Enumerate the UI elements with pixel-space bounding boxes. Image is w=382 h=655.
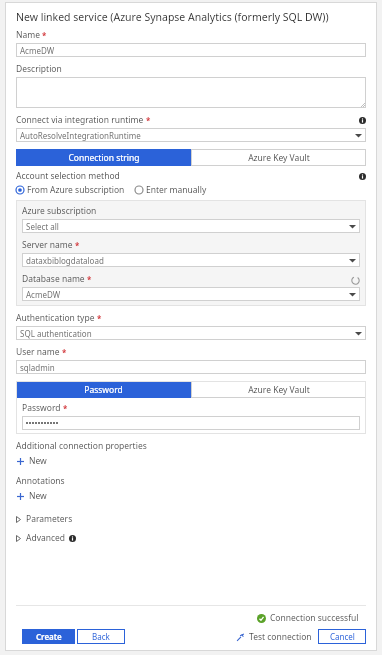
button[interactable]: Cancel <box>318 629 366 644</box>
staticText: Description <box>16 63 62 75</box>
button[interactable]: Advanced <box>16 530 366 546</box>
button[interactable]: Back <box>77 629 125 644</box>
staticText: * <box>75 240 80 251</box>
staticText: Create <box>36 631 62 642</box>
staticText: Server name <box>22 239 73 251</box>
button[interactable]: Parameters <box>16 511 366 527</box>
staticText: Azure Key Vault <box>248 152 310 164</box>
staticText: Annotations <box>16 475 65 487</box>
button[interactable]: Test connection <box>236 631 312 643</box>
staticText: From Azure subscription <box>27 184 125 196</box>
staticText: Additional connection properties <box>16 440 147 452</box>
staticText: sqladmin <box>20 362 55 373</box>
button[interactable]: Create <box>22 629 75 644</box>
button[interactable]: Password <box>16 381 191 398</box>
button[interactable]: Azure Key Vault <box>191 381 366 398</box>
staticText: Parameters <box>26 513 73 525</box>
staticText: * <box>97 313 102 324</box>
staticText: Enter manually <box>146 184 207 196</box>
staticText: Connection successful <box>270 612 359 624</box>
button[interactable]: Refresh <box>351 276 360 285</box>
button[interactable] <box>16 77 366 108</box>
staticText: SQL authentication <box>20 328 92 339</box>
staticText: * <box>42 30 47 41</box>
staticText: Account selection method <box>16 170 120 182</box>
staticText: AutoResolveIntegrationRuntime <box>20 130 141 141</box>
staticText: Name <box>16 29 40 41</box>
staticText: New <box>29 455 47 467</box>
staticText: Advanced <box>26 532 66 544</box>
staticText: Azure Key Vault <box>248 384 310 396</box>
button[interactable]: New <box>16 454 47 468</box>
staticText: New <box>29 490 47 502</box>
staticText: * <box>87 274 92 285</box>
button[interactable]: New <box>16 489 47 503</box>
staticText: Cancel <box>330 631 355 642</box>
button[interactable]: AcmeDW <box>16 43 366 57</box>
staticText: * <box>63 403 68 414</box>
staticText: dataxbiblogdataload <box>26 255 104 266</box>
staticText: AcmeDW <box>20 45 55 56</box>
button[interactable]: SQL authentication <box>16 326 366 340</box>
button[interactable]: dataxbiblogdataload <box>22 253 360 267</box>
staticText: Back <box>92 631 110 642</box>
staticText: Authentication type <box>16 312 95 324</box>
staticText: Test connection <box>249 631 312 643</box>
staticText: * <box>62 347 67 358</box>
staticText: Password <box>84 384 123 396</box>
staticText: Azure subscription <box>22 205 97 217</box>
button[interactable]: AcmeDW <box>22 287 360 301</box>
staticText: Select all <box>26 221 59 232</box>
staticText: AcmeDW <box>26 289 61 300</box>
staticText: Password <box>22 402 61 414</box>
staticText: New linked service (Azure Synapse Analyt… <box>16 10 329 24</box>
staticText: Connection string <box>68 152 140 164</box>
button[interactable] <box>22 416 360 430</box>
button[interactable]: From Azure subscription <box>16 184 125 196</box>
button[interactable]: Connection string <box>16 149 191 166</box>
button[interactable]: Azure Key Vault <box>191 149 366 166</box>
staticText: Connect via integration runtime <box>16 114 144 126</box>
button[interactable]: Select all <box>22 219 360 233</box>
staticText: User name <box>16 346 60 358</box>
button[interactable]: sqladmin <box>16 360 366 374</box>
button[interactable]: Enter manually <box>135 184 207 196</box>
button[interactable]: AutoResolveIntegrationRuntime <box>16 128 366 142</box>
staticText: Database name <box>22 273 85 285</box>
staticText: * <box>146 115 151 126</box>
